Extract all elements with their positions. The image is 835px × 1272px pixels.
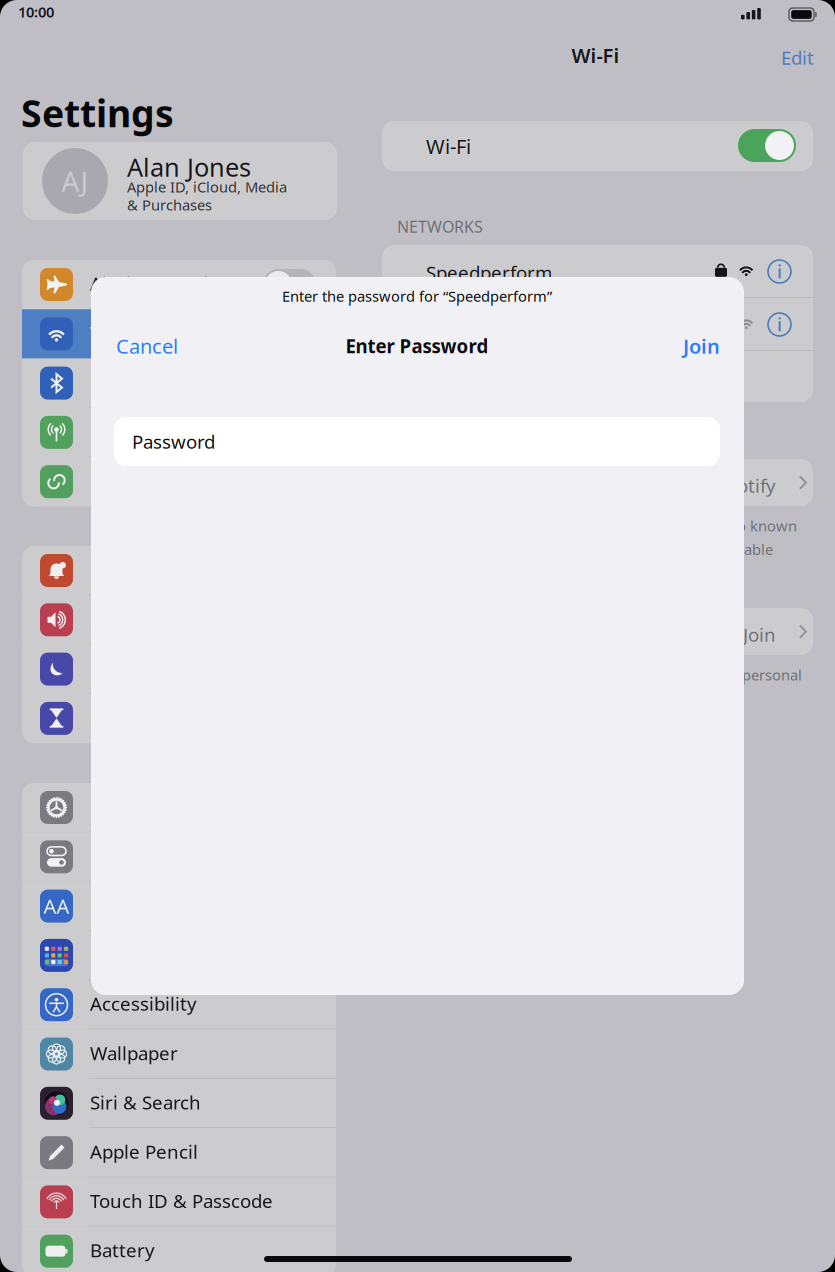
staticText: Settings	[21, 88, 174, 138]
staticText: networks are available, you will be noti…	[398, 539, 773, 559]
button[interactable]: Screen Time	[22, 694, 336, 743]
staticText: Notifications	[90, 557, 201, 582]
button[interactable]	[738, 129, 796, 162]
button[interactable]: Speedperform	[382, 245, 813, 297]
staticText: Wi-Fi	[571, 42, 619, 69]
button[interactable]: Control Center	[22, 832, 336, 882]
staticText: Airplane Mode	[90, 271, 219, 296]
button[interactable]: Cancel	[91, 327, 216, 365]
staticText: Enter the password for “Speedperform”	[282, 286, 552, 306]
staticText: Join	[683, 333, 720, 359]
button[interactable]: Focus	[22, 645, 336, 694]
staticText: Focus	[90, 656, 141, 680]
staticText: Wi-Fi	[426, 133, 471, 160]
staticText: Apple Pencil	[90, 1139, 198, 1164]
button[interactable]: Cellular	[22, 408, 336, 457]
button[interactable]: Siri & Search	[22, 1079, 336, 1128]
staticText: Wallpaper	[90, 1040, 178, 1065]
button[interactable]: Personal Hotspot	[22, 457, 336, 506]
button[interactable]: Password	[114, 417, 720, 466]
staticText: AA	[43, 893, 69, 919]
button[interactable]: Join	[620, 327, 720, 365]
button[interactable]: General	[22, 783, 336, 832]
button[interactable]: Accessibility	[22, 980, 336, 1029]
staticText: Ask to Join	[684, 622, 776, 647]
staticText: Speedperform	[426, 260, 552, 285]
button[interactable]: Battery	[22, 1227, 336, 1272]
button[interactable]: Other…	[382, 351, 813, 402]
staticText: Wi-Fi	[90, 320, 133, 345]
button[interactable]: Apple Pencil	[22, 1128, 336, 1177]
button[interactable]: Fluffy-Nets	[382, 298, 813, 350]
staticText: i	[777, 312, 782, 336]
button[interactable]: Wi-Fi	[22, 309, 336, 359]
staticText: Sounds	[90, 606, 155, 631]
button[interactable]: Auto-Join Hotspot	[382, 608, 813, 655]
staticText: 10:00	[18, 2, 54, 21]
staticText: Bluetooth	[90, 370, 178, 394]
staticText: Cellular	[90, 419, 158, 444]
staticText: Cancel	[116, 333, 178, 359]
staticText: Personal Hotspot	[90, 468, 242, 493]
staticText: & Purchases	[127, 195, 212, 214]
button[interactable]: Sounds	[22, 595, 336, 645]
staticText: Allow this device to automatically disco…	[398, 665, 802, 684]
staticText: General	[90, 794, 160, 819]
button[interactable]: AJ	[23, 142, 337, 220]
staticText: Known networks will be joined automatica…	[398, 516, 797, 535]
staticText: Enter Password	[345, 334, 488, 358]
staticText: Alan Jones	[127, 150, 251, 184]
button[interactable]: Wallpaper	[22, 1029, 336, 1079]
staticText: Notify	[723, 473, 776, 498]
button[interactable]: Bluetooth	[22, 359, 336, 408]
staticText: Edit	[781, 45, 814, 70]
button[interactable]: Home Screen & Dock	[22, 931, 336, 980]
staticText: Apple ID, iCloud, Media	[127, 177, 287, 196]
button[interactable]: Touch ID & Passcode	[22, 1177, 336, 1227]
staticText: NETWORKS	[397, 216, 483, 237]
staticText: Siri & Search	[90, 1090, 201, 1115]
staticText: Touch ID & Passcode	[90, 1188, 273, 1213]
staticText: Password	[132, 429, 215, 454]
staticText: i	[777, 259, 782, 283]
button[interactable]: Edit	[773, 39, 822, 76]
button[interactable]: Notifications	[22, 546, 336, 595]
staticText: Control Center	[90, 843, 221, 868]
button[interactable]: AA	[22, 882, 336, 931]
button[interactable]: Airplane Mode	[22, 260, 336, 309]
staticText: AJ	[61, 162, 88, 200]
staticText: Screen Time	[90, 705, 198, 730]
staticText: Accessibility	[90, 991, 197, 1016]
staticText: Battery	[90, 1238, 155, 1262]
button[interactable]: Ask to Join Networks	[382, 459, 813, 506]
